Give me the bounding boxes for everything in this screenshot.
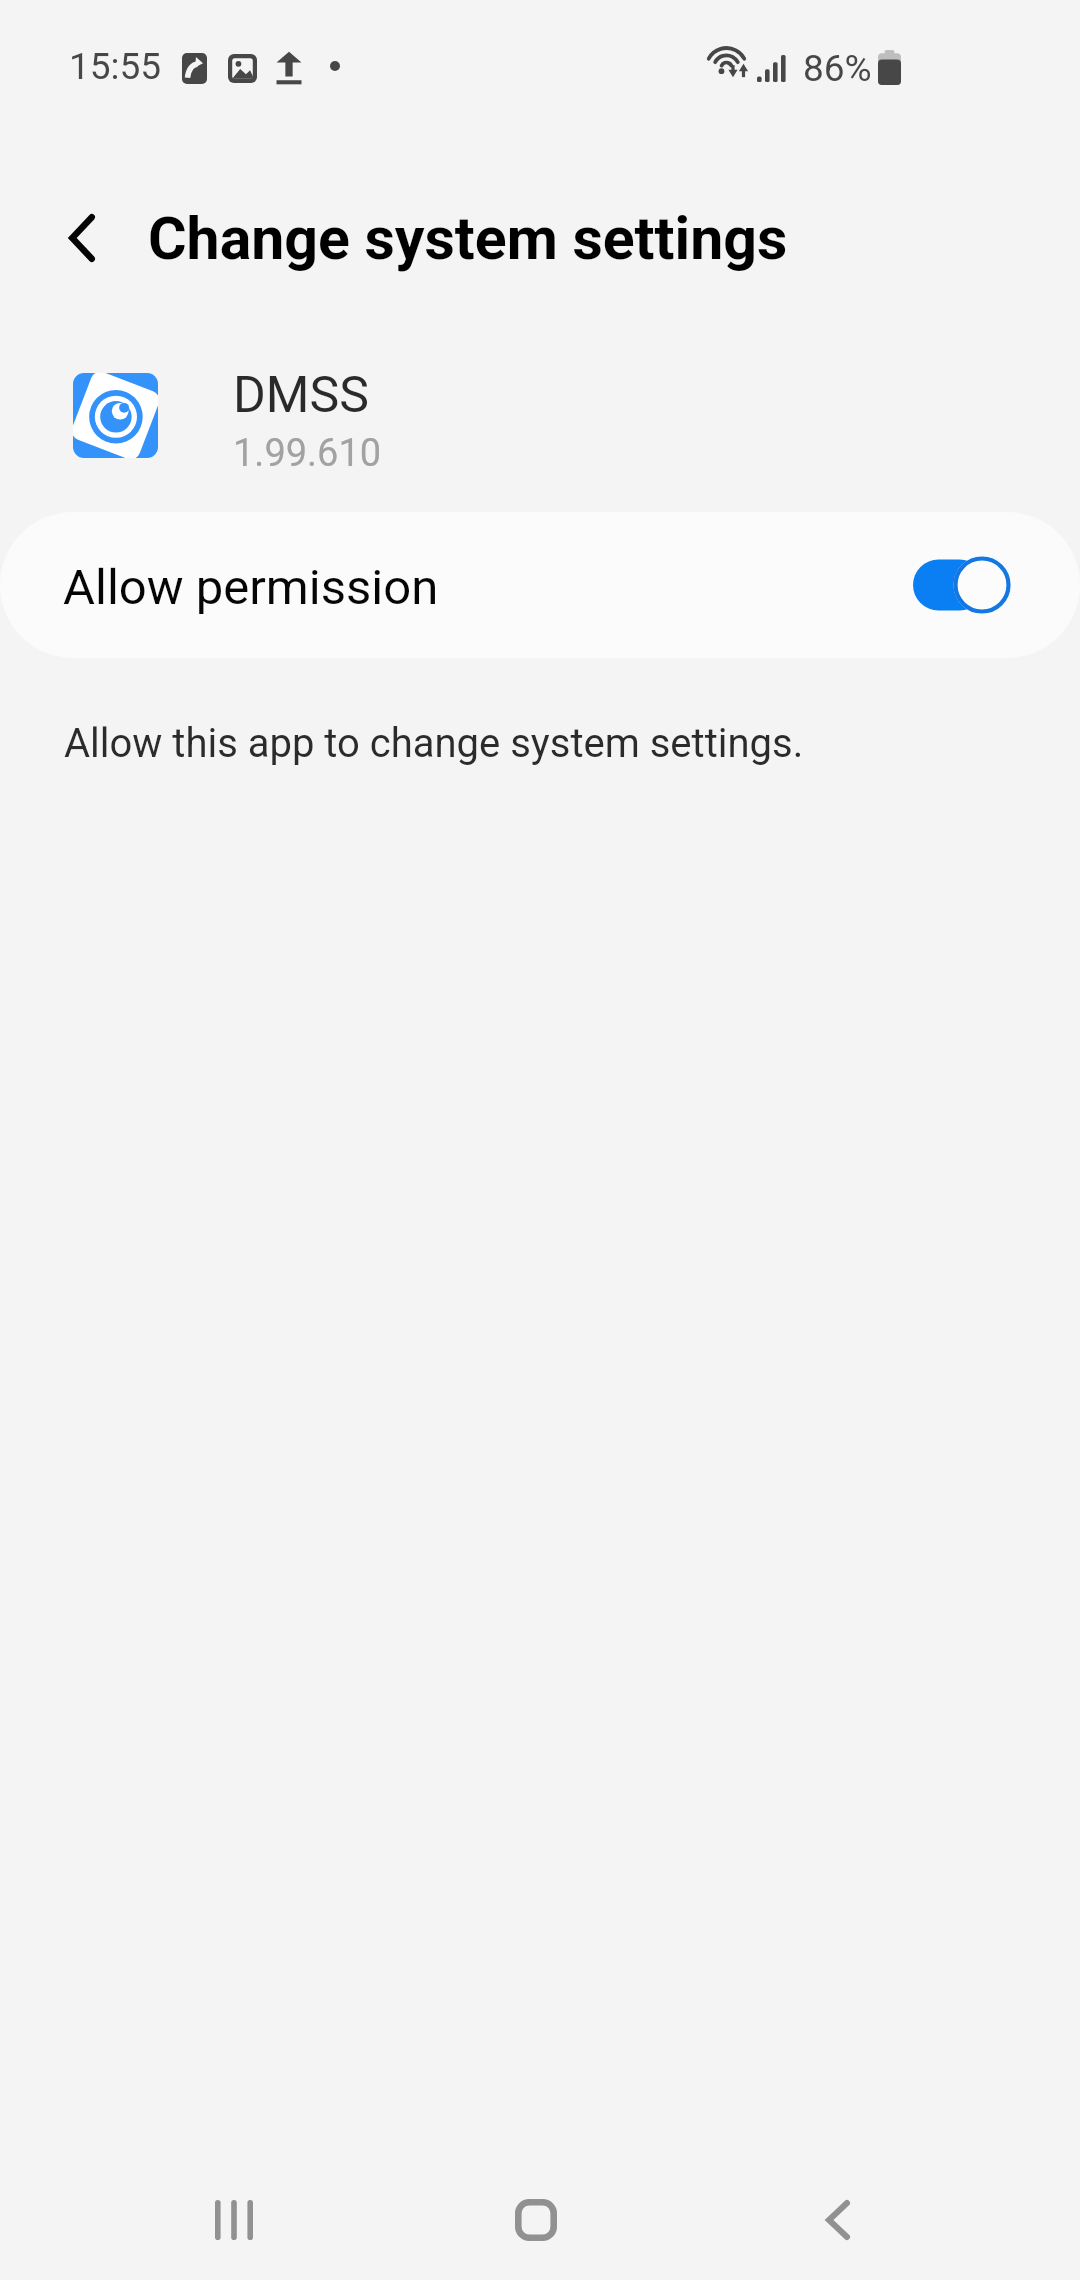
button[interactable]: Back bbox=[40, 196, 124, 280]
button[interactable]: Home bbox=[476, 2160, 596, 2280]
staticText: 86% bbox=[803, 47, 872, 90]
staticText: 15:55 bbox=[69, 45, 162, 88]
staticText: 1.99.610 bbox=[233, 431, 382, 476]
button[interactable]: Allow permission toggle, on bbox=[893, 523, 1031, 647]
button[interactable]: Back bbox=[778, 2160, 898, 2280]
button[interactable]: Recent apps bbox=[174, 2160, 294, 2280]
staticText: Change system settings bbox=[148, 204, 788, 273]
staticText: DMSS bbox=[233, 366, 369, 414]
staticText: Allow this app to change system settings… bbox=[64, 720, 804, 767]
button[interactable]: Allow permission bbox=[0, 512, 1080, 658]
staticText: Allow permission bbox=[63, 559, 439, 616]
